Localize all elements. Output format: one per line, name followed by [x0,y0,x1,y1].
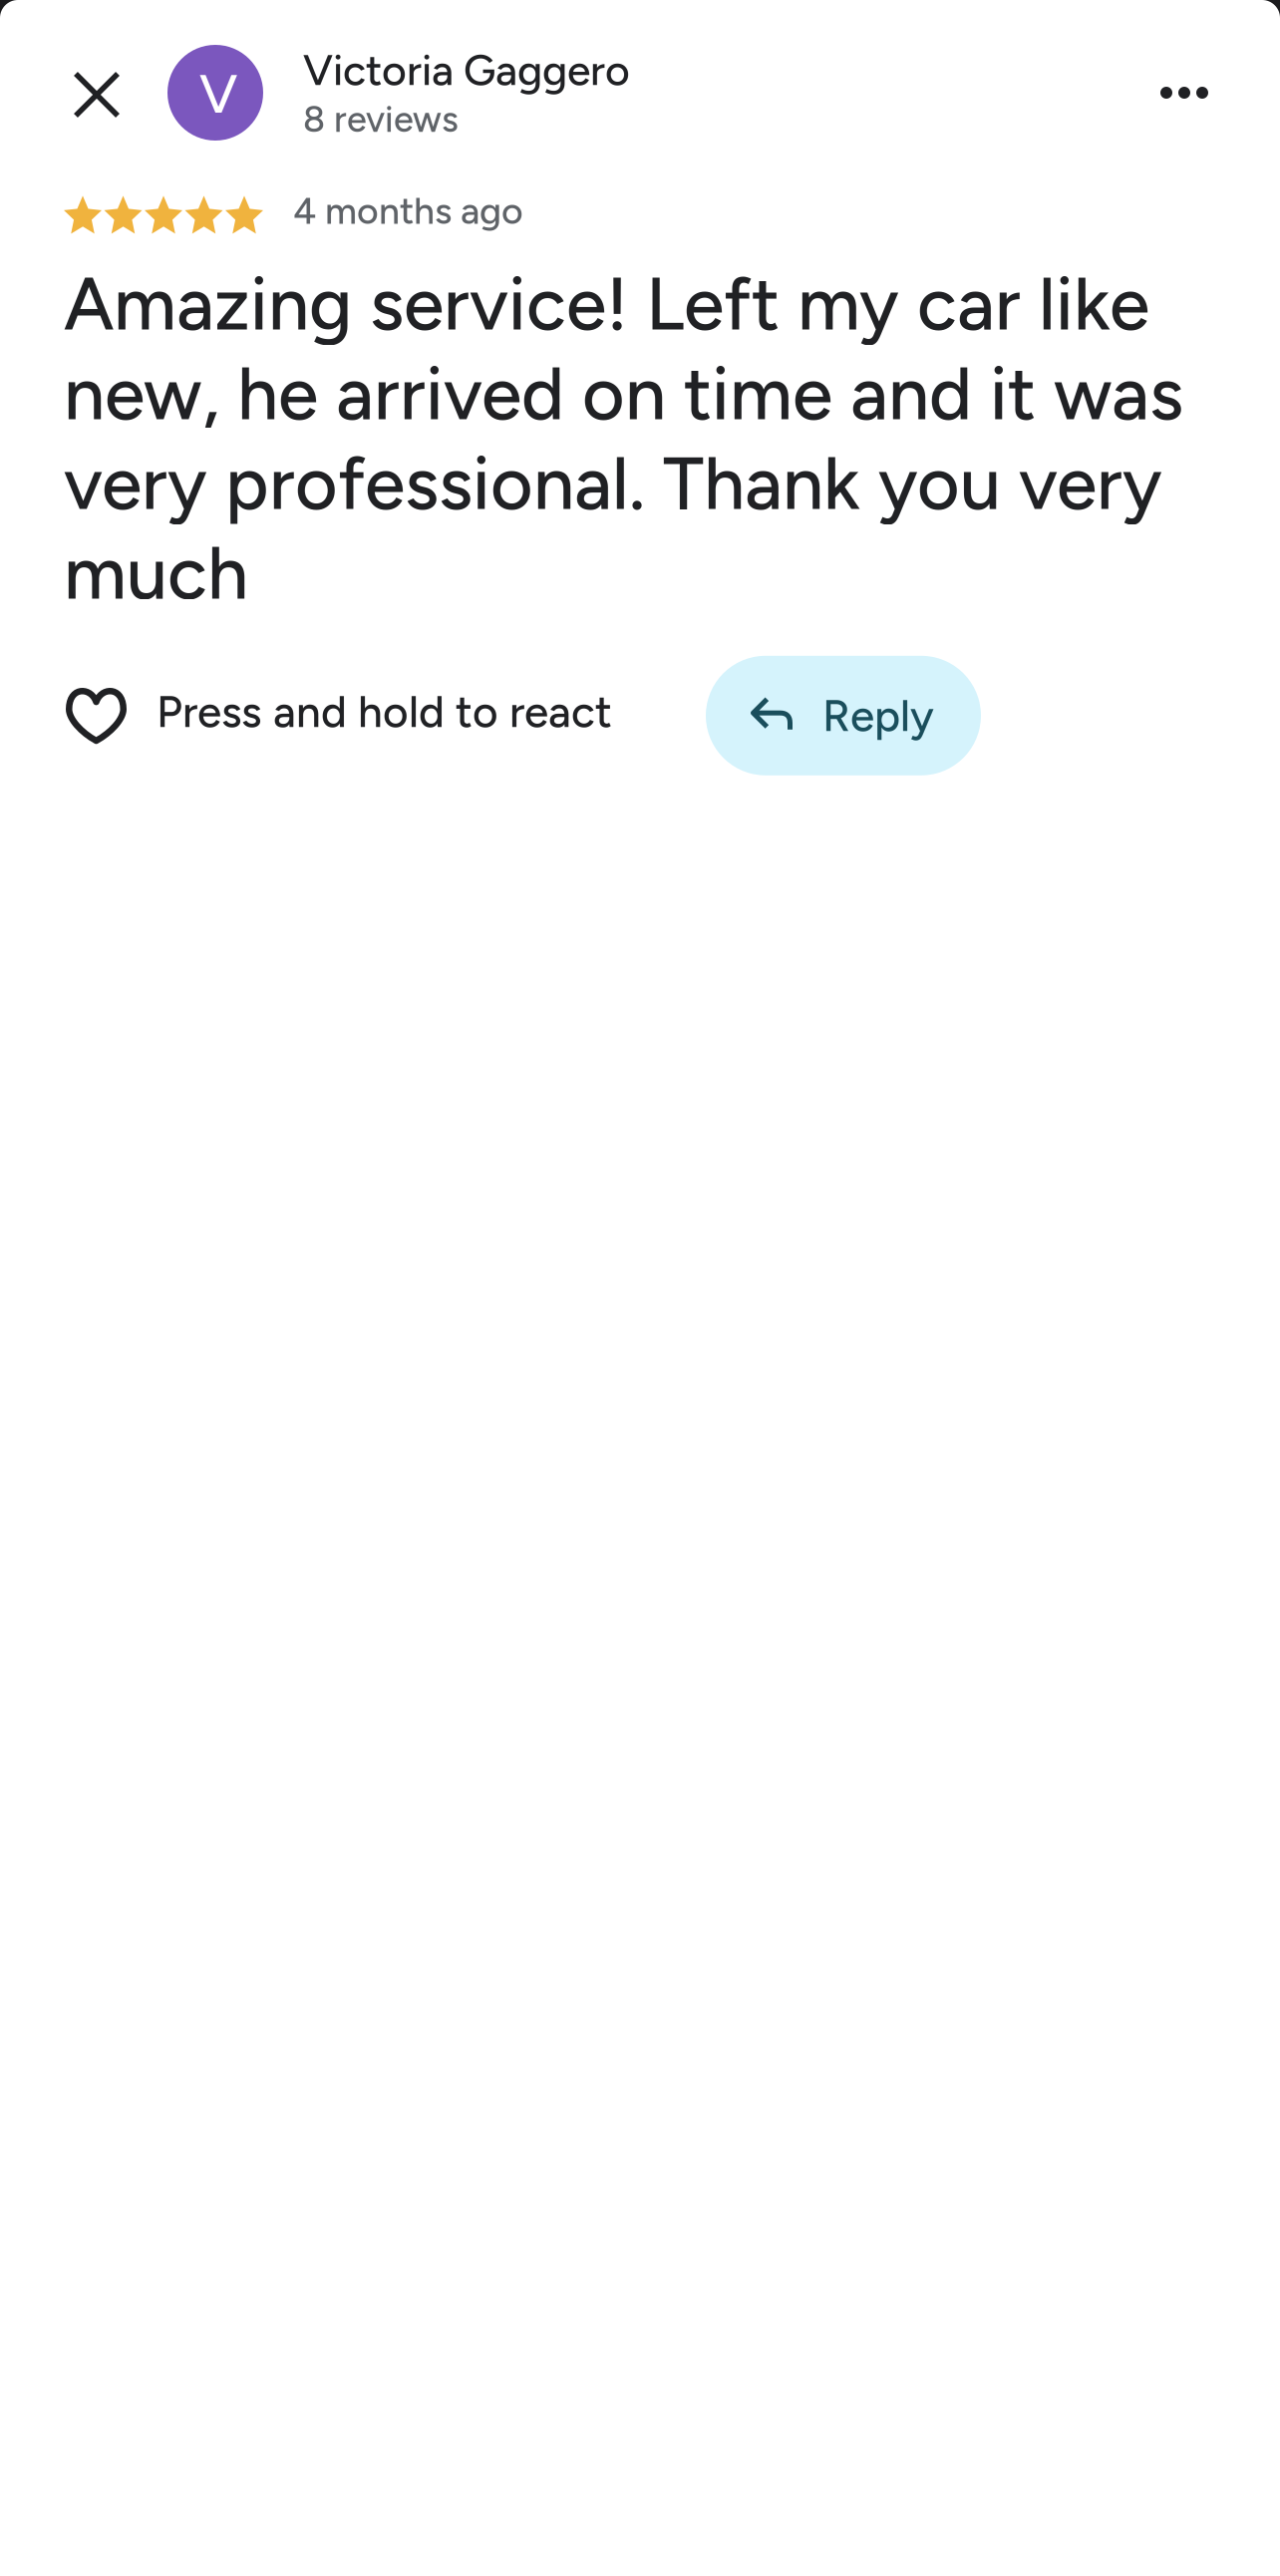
staticText: Press and hold to react [157,685,612,738]
button[interactable]: Press and hold to react [64,656,612,775]
staticText: Reply [822,689,934,742]
staticText: Amazing service! Left my car like new, h… [64,260,1183,617]
staticText: Victoria Gaggero [303,45,630,96]
staticText: V [199,61,237,126]
button[interactable]: V [167,45,630,141]
staticText: 4 months ago [293,188,523,233]
button[interactable]: More options [1136,45,1232,141]
staticText: 8 reviews [303,98,459,141]
button[interactable]: Close [48,45,144,141]
button[interactable]: Reply [706,656,981,775]
